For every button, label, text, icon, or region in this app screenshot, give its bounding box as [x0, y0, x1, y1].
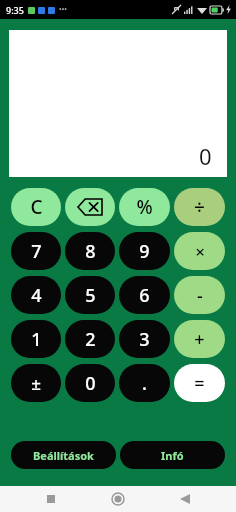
button[interactable]: 1: [11, 320, 61, 358]
staticText: •••: [59, 5, 67, 15]
staticText: 6: [139, 283, 150, 308]
button[interactable]: ±: [11, 364, 61, 402]
staticText: +: [194, 327, 205, 352]
button[interactable]: 0: [65, 364, 115, 402]
button[interactable]: 3: [119, 320, 170, 358]
staticText: =: [194, 371, 205, 396]
button[interactable]: +: [174, 320, 225, 358]
staticText: 9: [139, 239, 150, 264]
button[interactable]: 8: [65, 232, 115, 270]
staticText: Infó: [161, 448, 184, 463]
staticText: Beállítások: [33, 448, 94, 463]
button[interactable]: %: [119, 188, 170, 226]
staticText: 0: [85, 371, 96, 396]
staticText: 4: [31, 283, 42, 308]
button[interactable]: Backspace: [65, 188, 115, 226]
staticText: ÷: [194, 194, 205, 220]
staticText: -: [197, 283, 203, 308]
button[interactable]: 7: [11, 232, 61, 270]
staticText: C: [30, 194, 43, 220]
button[interactable]: 6: [119, 276, 170, 314]
staticText: 0: [199, 141, 212, 171]
button[interactable]: 9: [119, 232, 170, 270]
staticText: 3: [139, 327, 150, 352]
button[interactable]: ÷: [174, 188, 225, 226]
button[interactable]: 5: [65, 276, 115, 314]
staticText: 7: [31, 239, 42, 264]
staticText: ±: [31, 372, 41, 395]
button[interactable]: 4: [11, 276, 61, 314]
button[interactable]: Beállítások: [11, 441, 116, 469]
button[interactable]: Back: [169, 486, 201, 512]
button[interactable]: -: [174, 276, 225, 314]
button[interactable]: =: [174, 364, 225, 402]
staticText: 1: [31, 327, 42, 352]
button[interactable]: 2: [65, 320, 115, 358]
button[interactable]: Recents: [35, 486, 67, 512]
staticText: 5: [85, 283, 96, 308]
staticText: 8: [85, 239, 96, 264]
staticText: %: [136, 194, 153, 220]
staticText: .: [142, 371, 147, 396]
staticText: ×: [195, 240, 205, 263]
staticText: 9:35: [6, 4, 24, 16]
button[interactable]: C: [11, 188, 61, 226]
staticText: 2: [85, 327, 96, 352]
button[interactable]: Infó: [120, 441, 225, 469]
button[interactable]: Home: [102, 486, 134, 512]
button[interactable]: ×: [174, 232, 225, 270]
button[interactable]: .: [119, 364, 170, 402]
